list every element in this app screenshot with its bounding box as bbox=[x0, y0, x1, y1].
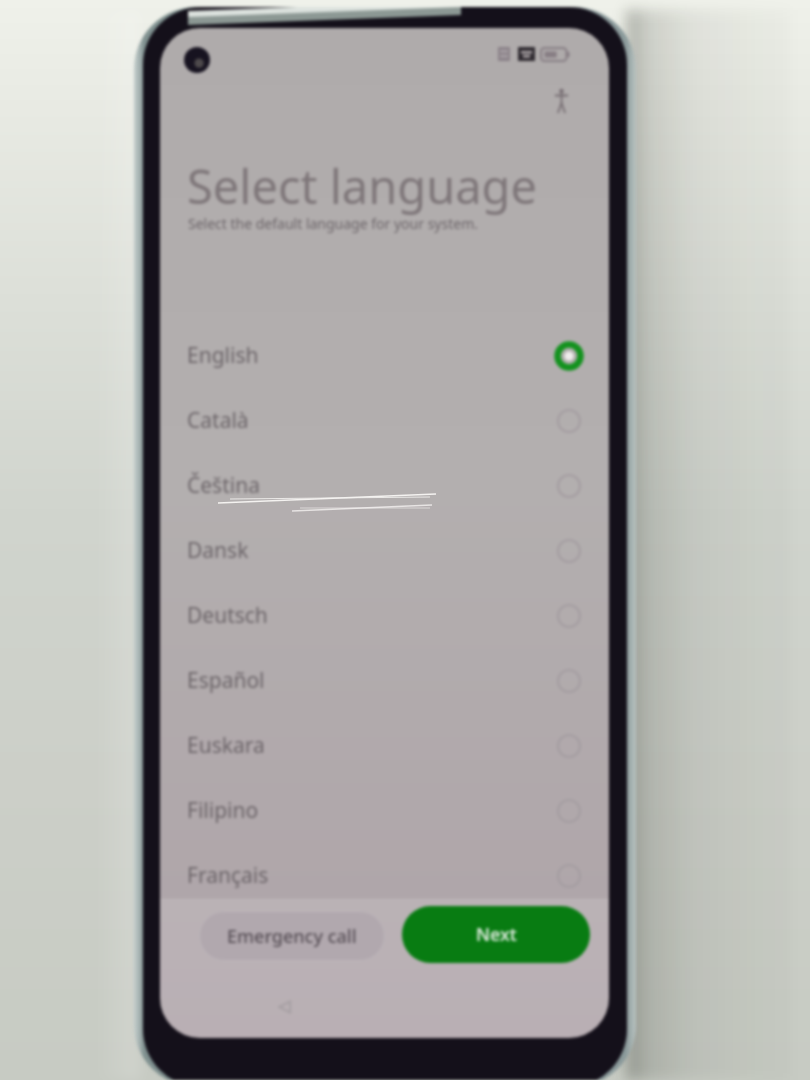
staticText: Čeština bbox=[187, 471, 260, 500]
staticText: Select the default language for your sys… bbox=[188, 214, 478, 233]
staticText: Español bbox=[187, 666, 265, 695]
button[interactable]: Dansk bbox=[160, 518, 609, 583]
staticText: Euskara bbox=[187, 731, 265, 760]
staticText: Français bbox=[187, 861, 269, 890]
staticText: English bbox=[187, 341, 259, 370]
button[interactable]: Back bbox=[272, 994, 298, 1020]
button[interactable]: Español bbox=[160, 648, 609, 713]
staticText: Deutsch bbox=[187, 601, 268, 630]
button[interactable]: Next bbox=[402, 906, 590, 963]
staticText: Dansk bbox=[187, 536, 249, 565]
button[interactable]: Accessibility bbox=[554, 88, 569, 113]
button[interactable]: Emergency call bbox=[198, 910, 386, 962]
button[interactable]: Euskara bbox=[160, 713, 609, 778]
staticText: Next bbox=[476, 922, 517, 947]
button[interactable]: Čeština bbox=[160, 453, 609, 518]
staticText: Select language bbox=[187, 154, 537, 218]
staticText: Filipino bbox=[187, 796, 259, 825]
staticText: Emergency call bbox=[227, 924, 357, 949]
button[interactable]: Français bbox=[160, 843, 609, 908]
button[interactable]: Filipino bbox=[160, 778, 609, 843]
button[interactable]: English bbox=[160, 323, 609, 388]
button[interactable]: Deutsch bbox=[160, 583, 609, 648]
staticText: Català bbox=[187, 406, 249, 435]
button[interactable]: Català bbox=[160, 388, 609, 453]
